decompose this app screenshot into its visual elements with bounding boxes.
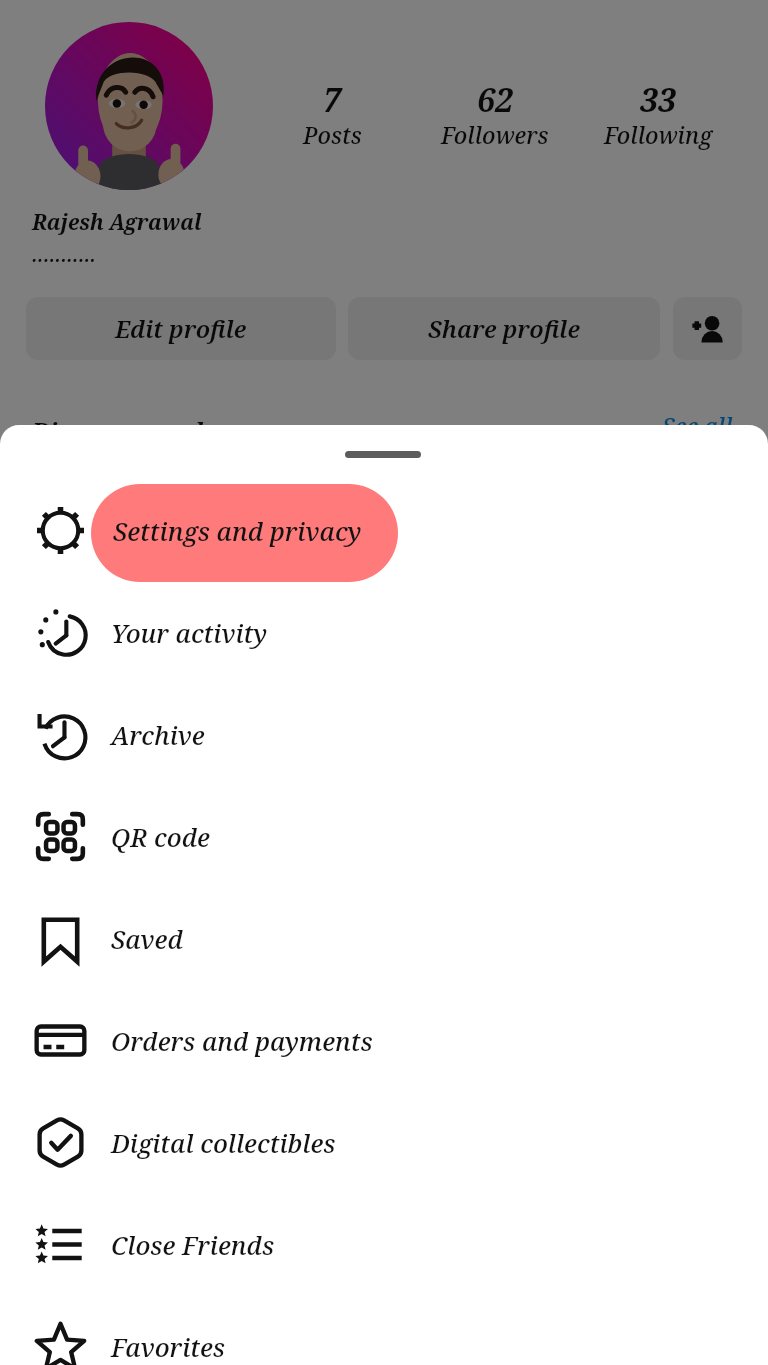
button[interactable]: Saved [0,887,768,989]
button[interactable]: Digital collectibles [0,1091,768,1193]
staticText: 33 [640,78,676,122]
button[interactable]: Archive [0,683,768,785]
staticText: ........... [32,238,97,268]
staticText: Favorites [111,1330,226,1365]
staticText: Following [604,119,713,150]
staticText: 7 [323,78,341,122]
button[interactable]: 7 [256,72,408,158]
button[interactable]: Profile photo [45,22,213,190]
staticText: Digital collectibles [111,1126,336,1161]
button[interactable]: Discover people [673,297,742,360]
staticText: Orders and payments [111,1024,373,1059]
staticText: Posts [303,119,362,150]
staticText: Archive [111,718,205,753]
button[interactable]: Share profile [348,297,660,360]
staticText: Saved [111,922,183,957]
staticText: Edit profile [115,312,247,345]
staticText: 62 [477,78,513,122]
button[interactable]: 62 [419,72,571,158]
staticText: Share profile [428,312,580,345]
button[interactable]: Edit profile [26,297,336,360]
staticText: Followers [441,119,549,150]
button[interactable]: Favorites [0,1295,768,1365]
button[interactable]: Your activity [0,581,768,683]
staticText: See all [662,410,733,441]
staticText: Discover people [32,415,217,446]
button[interactable]: QR code [0,785,768,887]
button[interactable]: Orders and payments [0,989,768,1091]
button[interactable]: 33 [582,72,734,158]
button[interactable]: Close menu [0,0,768,425]
button[interactable]: Settings and privacy [0,479,768,581]
staticText: Settings and privacy [113,514,362,549]
staticText: Close Friends [111,1228,275,1263]
staticText: Rajesh Agrawal [32,208,202,237]
staticText: Your activity [111,616,268,651]
staticText: QR code [111,820,210,855]
button[interactable]: See all [645,403,749,449]
button[interactable]: Close Friends [0,1193,768,1295]
